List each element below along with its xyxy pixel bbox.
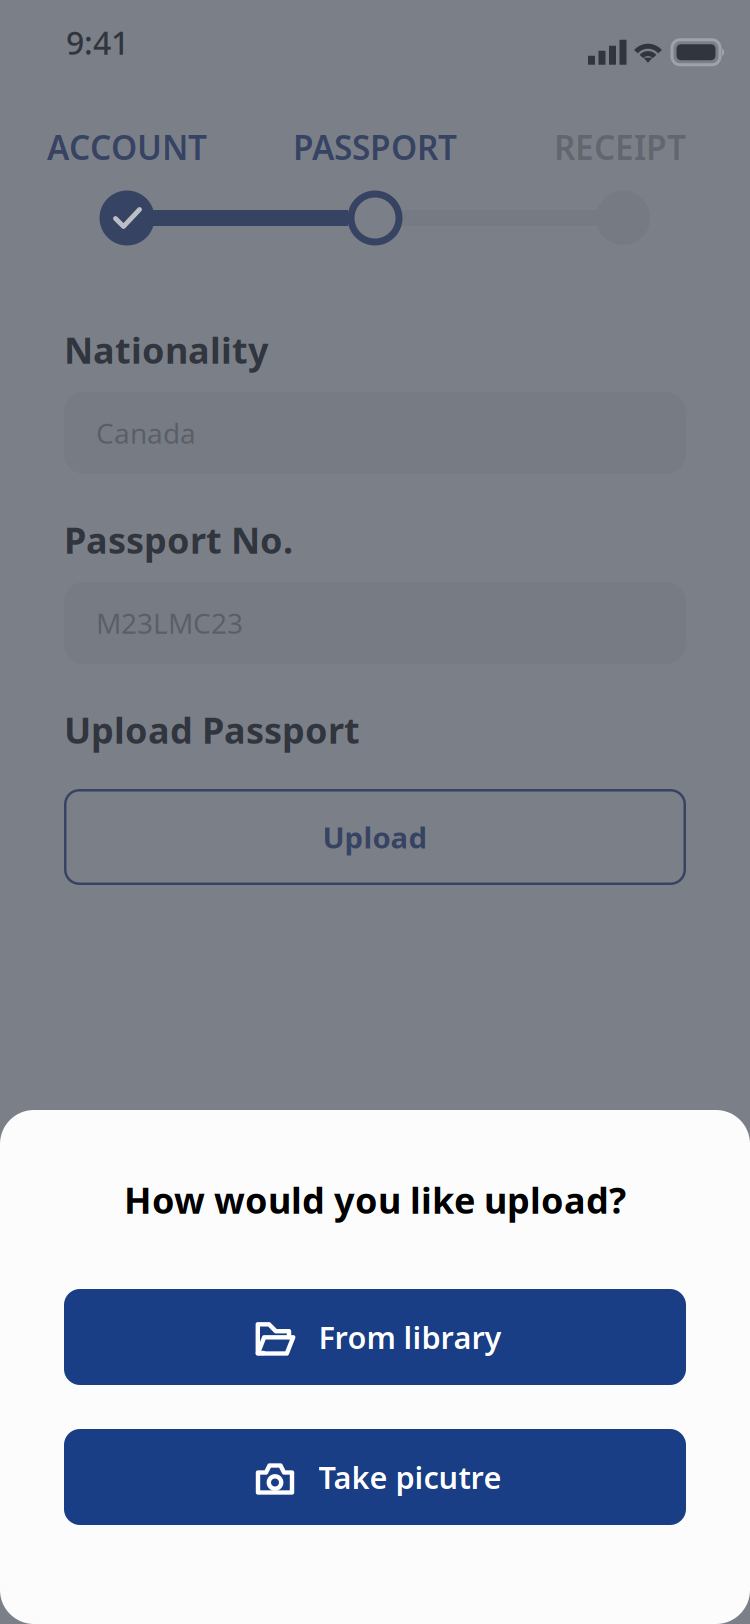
staticText: From library — [318, 1317, 501, 1357]
staticText: ACCOUNT — [47, 125, 207, 169]
staticText: RECEIPT — [554, 125, 686, 169]
button[interactable]: Take picutre — [64, 1429, 686, 1525]
staticText: M23LMC23 — [96, 604, 243, 642]
button[interactable]: Upload — [64, 789, 686, 885]
staticText: PASSPORT — [293, 125, 457, 169]
staticText: Nationality — [64, 326, 269, 374]
button[interactable]: ACCOUNT — [7, 130, 247, 164]
staticText: Canada — [96, 414, 196, 452]
button[interactable]: M23LMC23 — [64, 582, 686, 664]
staticText: Upload Passport — [64, 706, 360, 754]
button[interactable]: RECEIPT — [500, 130, 740, 164]
staticText: Passport No. — [64, 516, 293, 564]
staticText: Upload — [322, 817, 427, 856]
button[interactable]: From library — [64, 1289, 686, 1385]
staticText: 9:41 — [66, 21, 129, 63]
button[interactable]: PASSPORT — [255, 130, 495, 164]
staticText: How would you like upload? — [124, 1176, 626, 1224]
staticText: Take picutre — [318, 1457, 501, 1497]
